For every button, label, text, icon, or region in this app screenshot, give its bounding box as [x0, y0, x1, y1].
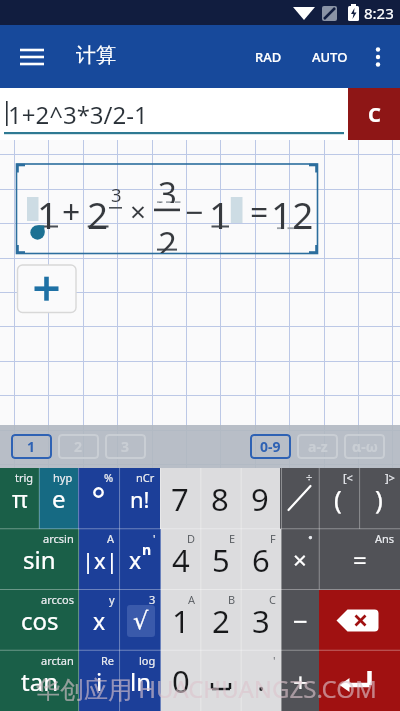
staticText: 计算 [76, 43, 116, 68]
staticText: n! [130, 484, 150, 514]
staticText: 8 [211, 478, 229, 520]
button[interactable] [0, 33, 48, 81]
staticText: − [293, 603, 308, 638]
button[interactable]: C [241, 590, 281, 651]
button[interactable]: y [79, 590, 120, 651]
button[interactable]: 3 [105, 434, 146, 459]
staticText: 3 [121, 437, 130, 456]
button[interactable] [319, 651, 400, 711]
staticText: 0-9 [260, 437, 281, 456]
staticText: x [129, 544, 142, 575]
staticText: = [353, 543, 367, 576]
staticText: ( [334, 481, 342, 516]
staticText: sin [23, 543, 56, 576]
button[interactable]: A [161, 590, 201, 651]
staticText: 3 [111, 182, 122, 207]
staticText: 8:23 [364, 3, 394, 23]
button[interactable]: [< [318, 468, 358, 529]
staticText: Re [101, 653, 115, 668]
staticText: [< [343, 470, 353, 485]
button[interactable]: α-ω [344, 434, 385, 459]
button[interactable]: 0 [161, 651, 201, 711]
staticText: + [293, 664, 308, 699]
staticText: = [250, 190, 269, 232]
button[interactable]: Ans [319, 529, 400, 590]
staticText: cos [21, 604, 59, 637]
button[interactable]: 0-9 [250, 434, 291, 459]
button[interactable]: ' [120, 529, 161, 590]
staticText: × [293, 543, 307, 576]
staticText: 4 [172, 539, 190, 581]
staticText: a-z [308, 437, 328, 456]
button[interactable]: 9 [240, 468, 280, 529]
button[interactable]: nCr [119, 468, 160, 529]
button[interactable]: B [201, 590, 241, 651]
staticText: 2 [212, 600, 230, 642]
button[interactable]: 7 [160, 468, 200, 529]
staticText: α-ω [352, 437, 378, 456]
staticText: |x| [82, 545, 118, 575]
staticText: x [93, 605, 106, 636]
button[interactable]: ' [241, 651, 281, 711]
button[interactable]: RAD [247, 40, 290, 74]
button[interactable]: ÷ [280, 468, 318, 529]
staticText: 华创应用 HUACHUANGZS.COM [36, 672, 377, 705]
button[interactable]: trig [0, 468, 39, 529]
button[interactable]: Re [79, 651, 120, 711]
button[interactable]: ]> [358, 468, 400, 529]
button[interactable]: A [79, 529, 120, 590]
staticText: − [185, 190, 204, 232]
staticText: nCr [136, 470, 155, 485]
button[interactable]: ∙ [281, 529, 319, 590]
button[interactable]: AUTO [304, 40, 356, 74]
button[interactable]: arcsin [0, 529, 79, 590]
staticText: ' [153, 531, 156, 546]
staticText: 9 [251, 478, 269, 520]
button[interactable]: 3 [120, 590, 161, 651]
button[interactable]: % [78, 468, 119, 529]
button[interactable]: 1 [11, 434, 52, 459]
button[interactable] [366, 45, 390, 69]
button[interactable] [201, 651, 241, 711]
button[interactable] [319, 590, 400, 651]
button[interactable]: hyp [39, 468, 78, 529]
button[interactable]: D [161, 529, 201, 590]
staticText: √ [133, 607, 149, 635]
button[interactable]: F [241, 529, 281, 590]
staticText: arcsin [43, 531, 74, 546]
staticText: 3 [158, 171, 177, 203]
staticText: ' [273, 653, 276, 668]
staticText: 12 [271, 189, 314, 233]
staticText: trig [15, 470, 34, 485]
button[interactable]: E [201, 529, 241, 590]
staticText: F [270, 531, 276, 546]
button[interactable]: + [281, 651, 319, 711]
button[interactable]: log [120, 651, 161, 711]
staticText: hyp [53, 470, 73, 485]
staticText: 2 [158, 221, 177, 253]
button[interactable]: arccos [0, 590, 79, 651]
staticText: B [228, 592, 236, 607]
staticText: 0 [172, 660, 190, 702]
button[interactable]: a-z [297, 434, 338, 459]
staticText: E [229, 531, 236, 546]
staticText: ∙ [307, 531, 314, 544]
button[interactable]: 1+2^3*3/2-1 [0, 88, 348, 140]
staticText: Ans [375, 531, 395, 546]
staticText: AUTO [312, 48, 348, 66]
staticText: C [368, 101, 381, 128]
staticText: n [142, 540, 152, 559]
staticText: ÷ [306, 470, 313, 485]
button[interactable]: 8 [200, 468, 240, 529]
button[interactable]: 2 [58, 434, 99, 459]
staticText: arccos [41, 592, 74, 607]
button[interactable]: arctan [0, 651, 79, 711]
staticText: × [130, 192, 147, 230]
staticText: 1 [37, 189, 59, 233]
staticText: 1 [209, 189, 231, 233]
button[interactable]: C [348, 88, 400, 140]
staticText: 5 [212, 539, 230, 581]
button[interactable]: − [281, 590, 319, 651]
staticText: % [104, 470, 114, 485]
staticText: ) [375, 481, 383, 516]
